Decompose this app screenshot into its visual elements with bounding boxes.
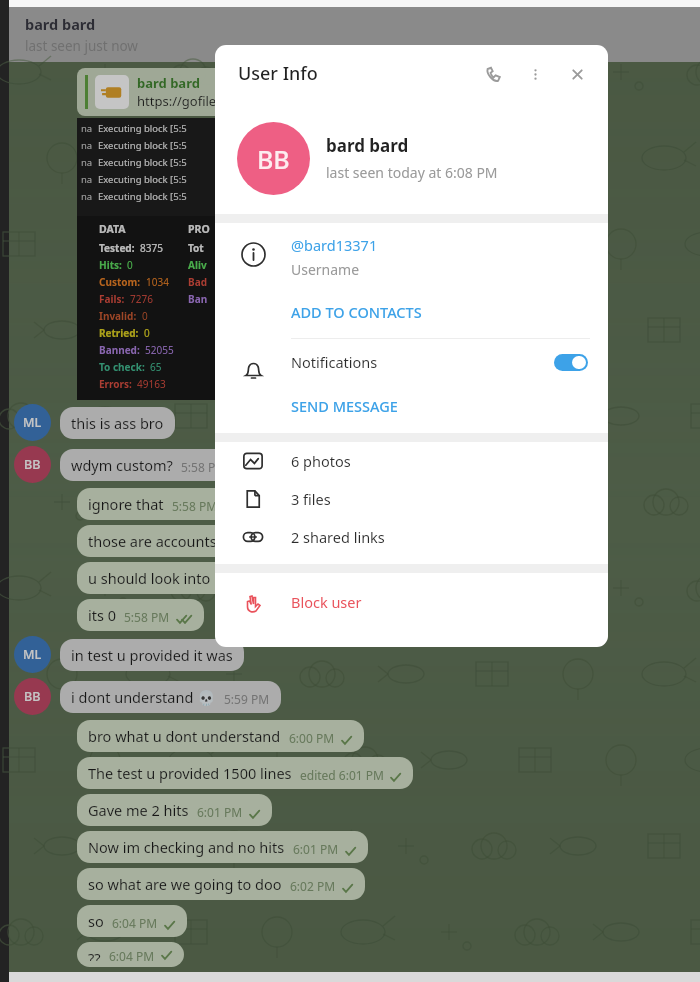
staticText: Executing block [5:5: [98, 139, 187, 152]
staticText: User Info: [238, 61, 318, 86]
staticText: 6:04 PM: [112, 915, 158, 931]
button[interactable]: @bard13371: [291, 235, 608, 279]
staticText: Tested:: [99, 241, 135, 255]
staticText: Now im checking and no hits: [88, 837, 285, 857]
staticText: so: [88, 911, 104, 931]
staticText: BB: [257, 142, 290, 176]
button[interactable]: Notifications: [291, 339, 588, 385]
staticText: 5:58 PM: [172, 498, 218, 514]
staticText: 0: [144, 326, 150, 340]
staticText: so what are we going to doo: [88, 874, 282, 894]
button[interactable]: this is ass bro: [71, 413, 164, 433]
button[interactable]: those are accounts that: [88, 531, 266, 551]
staticText: in test u provided it was: [71, 645, 233, 665]
button[interactable]: 3 files: [215, 480, 608, 518]
staticText: Executing block [5:5: [98, 156, 187, 169]
staticText: 0: [127, 258, 133, 272]
staticText: Retried:: [99, 326, 139, 340]
staticText: The test u provided 1500 lines: [88, 763, 292, 783]
staticText: this is ass bro: [71, 413, 164, 433]
button[interactable]: bro what u dont understand: [88, 726, 353, 746]
staticText: Gave me 2 hits: [88, 800, 189, 820]
button[interactable]: 2 shared links: [215, 518, 608, 556]
button[interactable]: The test u provided 1500 lines: [88, 763, 402, 783]
staticText: DATA: [99, 222, 126, 236]
staticText: 7276: [130, 292, 153, 306]
button[interactable]: wdym custom?: [71, 455, 227, 475]
staticText: 6 photos: [291, 451, 351, 471]
staticText: @bard13371: [291, 235, 378, 255]
staticText: PRO: [188, 222, 210, 236]
staticText: Errors:: [99, 377, 132, 391]
button[interactable]: 6 photos: [215, 442, 608, 480]
button[interactable]: Now im checking and no hits: [88, 837, 357, 857]
staticText: na: [81, 173, 93, 186]
staticText: ADD TO CONTACTS: [291, 302, 422, 322]
staticText: those are accounts that: [88, 531, 248, 551]
staticText: Hits:: [99, 258, 122, 272]
staticText: 0: [142, 309, 148, 323]
staticText: bard bard: [25, 14, 96, 34]
staticText: Fails:: [99, 292, 125, 306]
button[interactable]: ADD TO CONTACTS: [291, 297, 608, 327]
button[interactable]: ??: [88, 948, 173, 961]
staticText: 5:58 PM: [181, 459, 227, 475]
staticText: Ban: [188, 292, 208, 306]
staticText: BB: [24, 688, 41, 705]
staticText: Banned:: [99, 343, 140, 357]
staticText: wdym custom?: [71, 455, 173, 475]
button[interactable]: Gave me 2 hits: [88, 800, 261, 820]
staticText: Executing block [5:5: [98, 122, 187, 135]
button[interactable]: More options: [518, 57, 552, 91]
staticText: ML: [23, 414, 42, 431]
staticText: 8375: [140, 241, 163, 255]
staticText: ignore that: [88, 494, 164, 514]
button[interactable]: Block user: [215, 573, 608, 631]
staticText: 5:59 PM: [224, 691, 270, 707]
staticText: 52055: [145, 343, 174, 357]
staticText: 6:01 PM: [293, 841, 339, 857]
staticText: To check:: [99, 360, 145, 374]
button[interactable]: so what are we going to doo: [88, 874, 354, 894]
staticText: its 0: [88, 605, 116, 625]
staticText: 49163: [137, 377, 166, 391]
button[interactable]: its 0: [88, 605, 193, 625]
staticText: last seen just now: [25, 37, 138, 55]
staticText: bro what u dont understand: [88, 726, 281, 746]
staticText: Tot: [188, 241, 204, 255]
staticText: na: [81, 156, 93, 169]
button[interactable]: ignore that: [88, 494, 236, 514]
staticText: na: [81, 139, 93, 152]
staticText: bard bard: [137, 74, 200, 92]
staticText: last seen today at 6:08 PM: [326, 163, 498, 182]
staticText: ML: [23, 646, 42, 663]
staticText: bard bard: [326, 134, 409, 157]
button[interactable]: Close: [560, 57, 594, 91]
staticText: 5:58 PM: [124, 609, 170, 625]
staticText: 6:01 PM: [197, 804, 243, 820]
staticText: Executing block [5:5: [98, 173, 187, 186]
button[interactable]: so: [88, 911, 176, 931]
staticText: Bad: [188, 275, 207, 289]
staticText: edited 6:01 PM: [300, 767, 384, 783]
staticText: https://gofile.io/: [137, 92, 236, 110]
staticText: na: [81, 122, 93, 135]
staticText: Invalid:: [99, 309, 137, 323]
button[interactable]: Call: [476, 57, 510, 91]
button[interactable]: SEND MESSAGE: [291, 391, 608, 421]
staticText: SEND MESSAGE: [291, 396, 398, 416]
staticText: na: [81, 190, 93, 203]
staticText: Custom:: [99, 275, 141, 289]
button[interactable]: i dont understand 💀: [71, 687, 270, 707]
staticText: 6:02 PM: [290, 878, 336, 894]
staticText: 65: [150, 360, 162, 374]
staticText: ??: [88, 948, 101, 961]
button[interactable]: in test u provided it was: [71, 645, 233, 665]
staticText: Notifications: [291, 352, 378, 372]
staticText: 6:04 PM: [109, 948, 155, 961]
staticText: u should look into hits: [88, 568, 239, 588]
button[interactable]: u should look into hits: [88, 568, 257, 588]
staticText: 1034: [146, 275, 169, 289]
staticText: Block user: [291, 592, 362, 612]
staticText: BB: [24, 456, 41, 473]
